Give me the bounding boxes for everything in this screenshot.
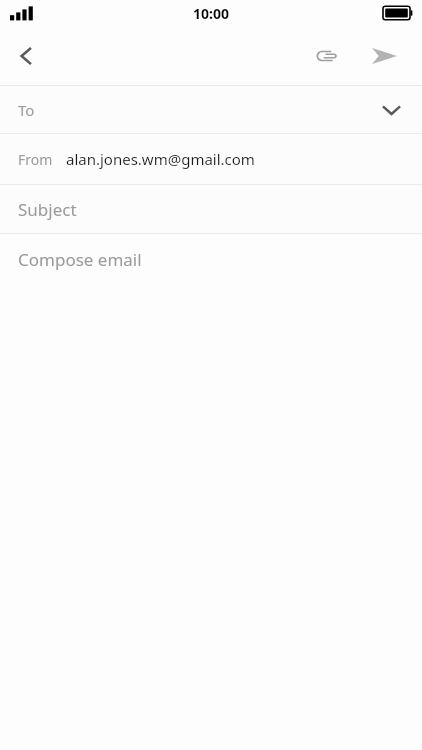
button[interactable]: Compose email: [0, 234, 422, 284]
button[interactable]: Expand recipients: [373, 92, 409, 128]
button[interactable]: From: [0, 134, 422, 184]
staticText: From: [18, 150, 53, 169]
staticText: alan.jones.wm@gmail.com: [66, 149, 255, 169]
staticText: To: [18, 100, 35, 120]
staticText: Compose email: [18, 248, 142, 271]
staticText: 10:00: [193, 4, 229, 23]
button[interactable]: To: [0, 86, 422, 133]
button[interactable]: Attach file: [308, 36, 348, 76]
button[interactable]: Subject: [0, 185, 422, 233]
staticText: Subject: [18, 198, 77, 221]
button[interactable]: Back: [6, 36, 46, 76]
button[interactable]: Send: [364, 36, 404, 76]
